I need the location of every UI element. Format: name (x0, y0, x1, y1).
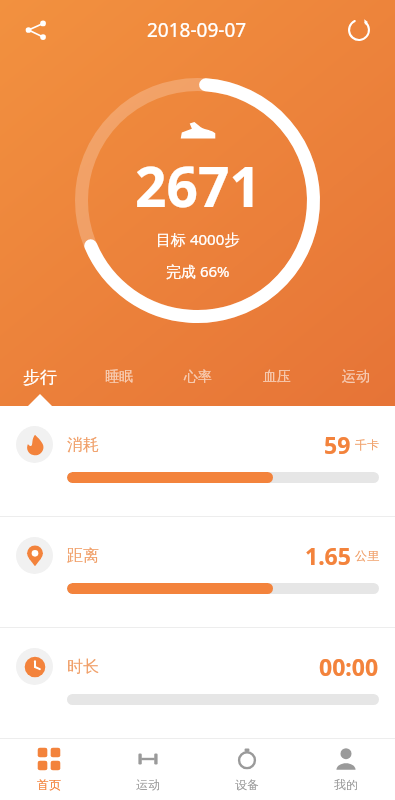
button[interactable]: 时长 (0, 628, 395, 738)
staticText: 时长 (67, 657, 99, 677)
staticText: 59 (324, 429, 351, 460)
staticText: 2018-09-07 (147, 17, 247, 43)
staticText: 步行 (23, 367, 57, 388)
staticText: 完成 66% (166, 261, 230, 281)
staticText: 1.65 (305, 540, 351, 571)
staticText: 心率 (184, 368, 212, 386)
button[interactable]: 心率 (158, 348, 237, 406)
button[interactable]: 设备 (197, 739, 296, 800)
button[interactable]: 睡眠 (79, 348, 158, 406)
staticText: 千卡 (355, 437, 379, 452)
staticText: 运动 (136, 777, 160, 792)
button[interactable]: 距离 (0, 517, 395, 627)
button[interactable]: Share (14, 8, 58, 52)
staticText: 距离 (67, 546, 99, 566)
staticText: 00:00 (319, 651, 379, 682)
staticText: 血压 (263, 368, 291, 386)
staticText: 2671 (135, 148, 261, 223)
button[interactable]: 首页 (0, 739, 98, 800)
button[interactable]: 运动 (98, 739, 197, 800)
button[interactable]: 我的 (296, 739, 395, 800)
staticText: 消耗 (67, 435, 99, 455)
button[interactable]: 消耗 (0, 406, 395, 516)
staticText: 公里 (355, 548, 379, 563)
staticText: 设备 (235, 777, 259, 792)
button[interactable]: 运动 (316, 348, 395, 406)
button[interactable]: Refresh (337, 8, 381, 52)
button[interactable]: 血压 (237, 348, 316, 406)
staticText: 目标 4000步 (156, 229, 240, 249)
staticText: 首页 (37, 777, 61, 792)
staticText: 睡眠 (105, 368, 133, 386)
button[interactable]: 步行 (0, 348, 79, 406)
staticText: 运动 (342, 368, 370, 386)
staticText: 我的 (334, 777, 358, 792)
